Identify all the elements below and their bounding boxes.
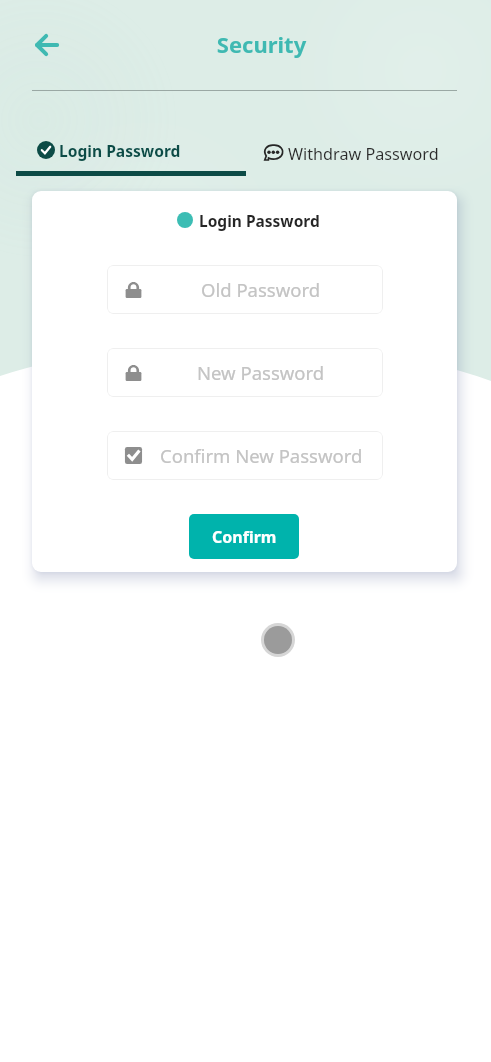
staticText: Confirm [212,526,277,548]
staticText: Withdraw Password [288,143,439,165]
staticText: Login Password [199,210,320,231]
staticText: Old Password [201,277,321,302]
button[interactable]: Back [25,23,69,67]
button[interactable]: Withdraw Password [254,137,439,171]
staticText: Security [32,29,491,59]
button[interactable]: New Password [107,348,383,397]
button[interactable]: Old Password [107,265,383,314]
staticText: New Password [197,360,325,385]
button[interactable]: Confirm New Password [107,431,383,480]
button[interactable]: Login Password [16,130,246,170]
staticText: Login Password [59,140,181,161]
button[interactable]: Confirm [189,514,299,559]
staticText: Confirm New Password [160,443,363,468]
